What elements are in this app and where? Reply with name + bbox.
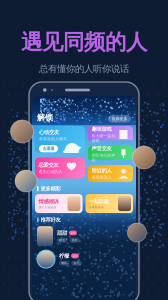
staticText: 柠檬 [59, 253, 69, 259]
button[interactable]: 柠檬 [37, 250, 131, 268]
staticText: 发现身边人 [91, 175, 111, 180]
staticText: 趣味游戏 [91, 126, 111, 132]
button[interactable]: 声音交友 [88, 145, 133, 162]
staticText: 甜甜 [57, 230, 67, 236]
staticText: 附近的人 [91, 167, 111, 174]
staticText: 遇见同频的人 [21, 29, 147, 55]
staticText: 恋爱交友 [38, 162, 58, 168]
staticText: 查看更多 [111, 116, 127, 121]
staticText: 找个人说说话 [38, 206, 56, 209]
button[interactable]: 查看更多 [108, 115, 131, 122]
staticText: 听听他们的声音 [91, 153, 115, 163]
staticText: 旅行 [74, 261, 80, 265]
staticText: 唱歌 [72, 238, 78, 242]
button[interactable]: 恋爱交友 [35, 157, 85, 178]
staticText: 分享好音乐 [89, 206, 104, 209]
staticText: 23 [73, 254, 77, 258]
button[interactable]: 附近的人 [88, 165, 133, 182]
staticText: 声音交友 [91, 145, 111, 152]
button[interactable]: 情感倾诉 [35, 194, 82, 213]
staticText: 总有懂你的人听你说话 [39, 63, 129, 75]
staticText: 情感倾诉 [38, 198, 58, 205]
staticText: 解锁 [37, 113, 53, 122]
staticText: 去看看 [42, 146, 54, 151]
staticText: 电影 [61, 261, 67, 265]
staticText: 心动交友 [39, 129, 59, 136]
staticText: 聊天 [59, 238, 65, 242]
button[interactable]: 一起听歌 [85, 194, 133, 213]
staticText: 和喜欢的人聊天 [39, 137, 67, 141]
staticText: 更多精彩 [41, 185, 61, 192]
staticText: 遇见心动的人 [38, 169, 62, 174]
staticText: 推荐好友 [41, 217, 61, 223]
button[interactable]: 心动交友 [35, 126, 85, 153]
staticText: 和大家一起玩游戏 [91, 133, 115, 143]
staticText: 23 [71, 231, 75, 235]
button[interactable]: 趣味游戏 [88, 126, 133, 143]
staticText: 一起听歌 [89, 198, 109, 205]
button[interactable]: 甜甜 [37, 226, 131, 246]
